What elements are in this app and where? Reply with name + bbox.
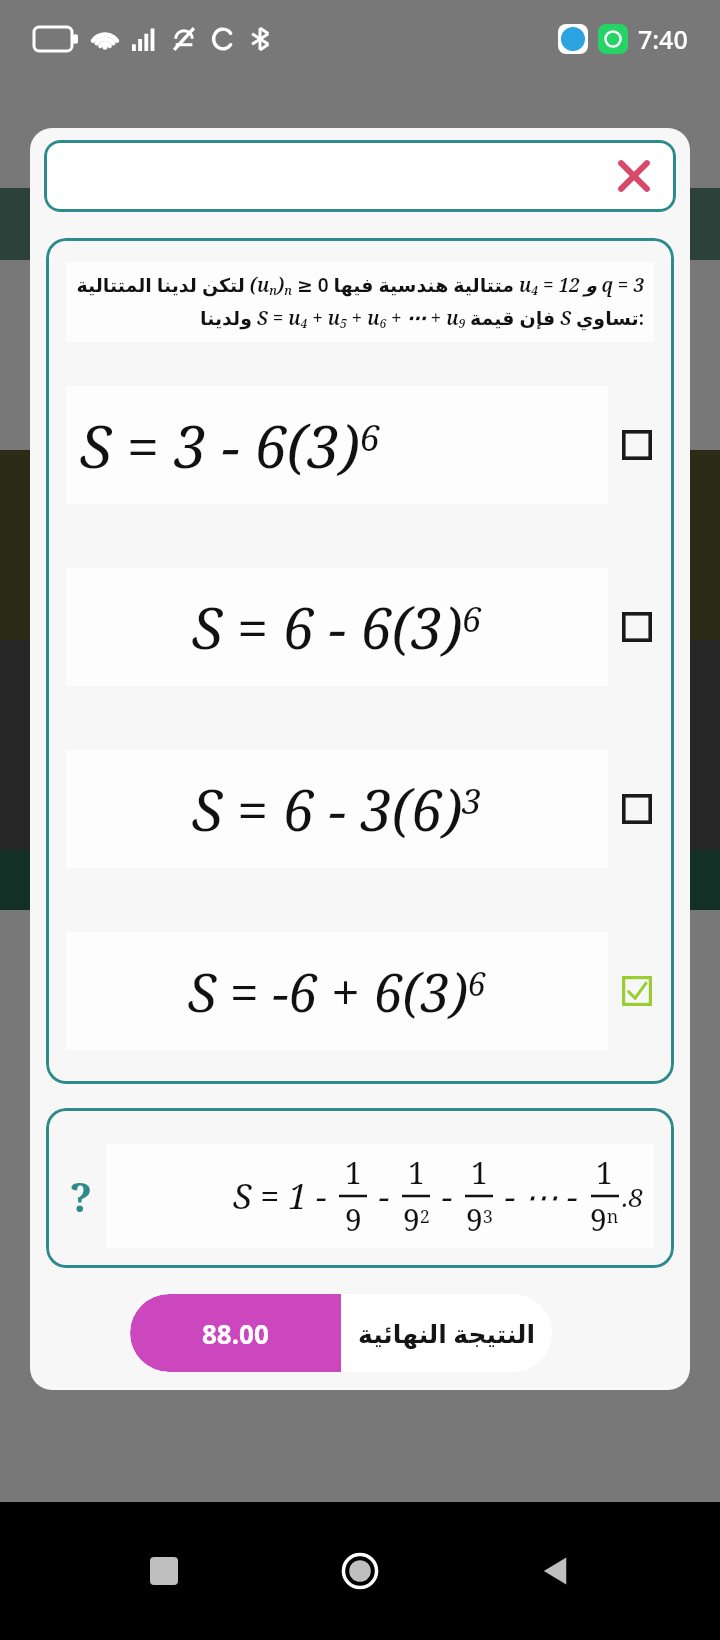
button[interactable]: Select answer <box>620 792 654 826</box>
button[interactable]: Select answer <box>620 428 654 462</box>
staticText: ? <box>70 1169 92 1223</box>
staticText: S = 6 − 6(3)6 <box>192 589 482 665</box>
staticText: لتكن لدينا المتتالية (un)n ≥ 0 متتالية ه… <box>76 272 644 299</box>
staticText: 93 <box>466 1199 493 1240</box>
staticText: S = 3 − 6(3)6 <box>80 406 380 485</box>
staticText: 1 <box>408 1152 425 1193</box>
staticText: النتيجة النهائية <box>358 1316 536 1350</box>
staticText: 1 <box>596 1152 613 1193</box>
button[interactable]: Home <box>328 1539 392 1603</box>
button[interactable]: Recents <box>132 1539 196 1603</box>
button[interactable]: Select answer <box>620 610 654 644</box>
button[interactable]: S = 3 − 6(3)6 <box>66 386 654 504</box>
staticText: S = −6 + 6(3)6 <box>188 956 486 1027</box>
staticText: 1 <box>471 1152 488 1193</box>
staticText: 9 <box>345 1199 362 1240</box>
button[interactable]: S = 6 − 3(6)3 <box>66 750 654 868</box>
staticText: S = 1 − <box>233 1173 336 1219</box>
button[interactable]: Back <box>524 1539 588 1603</box>
staticText: − ⋯ − <box>496 1173 587 1219</box>
staticText: 88.00 <box>202 1316 269 1351</box>
button[interactable]: Selected answer <box>620 974 654 1008</box>
button[interactable]: S = 6 − 6(3)6 <box>66 568 654 686</box>
staticText: 1 <box>345 1152 362 1193</box>
staticText: − <box>370 1173 399 1219</box>
button[interactable]: Close <box>608 150 660 202</box>
staticText: − <box>433 1173 462 1219</box>
button[interactable]: 88.00 <box>130 1294 552 1372</box>
button[interactable]: S = −6 + 6(3)6 <box>66 932 654 1050</box>
staticText: 7:40 <box>638 22 688 56</box>
staticText: .8 <box>622 1179 644 1214</box>
staticText: ولدينا S = u4 + u5 + u6 + ⋯ + u9 فإن قيم… <box>200 305 644 332</box>
staticText: S = 6 − 3(6)3 <box>192 771 482 847</box>
staticText: 92 <box>403 1199 430 1240</box>
staticText: 9n <box>590 1199 619 1240</box>
